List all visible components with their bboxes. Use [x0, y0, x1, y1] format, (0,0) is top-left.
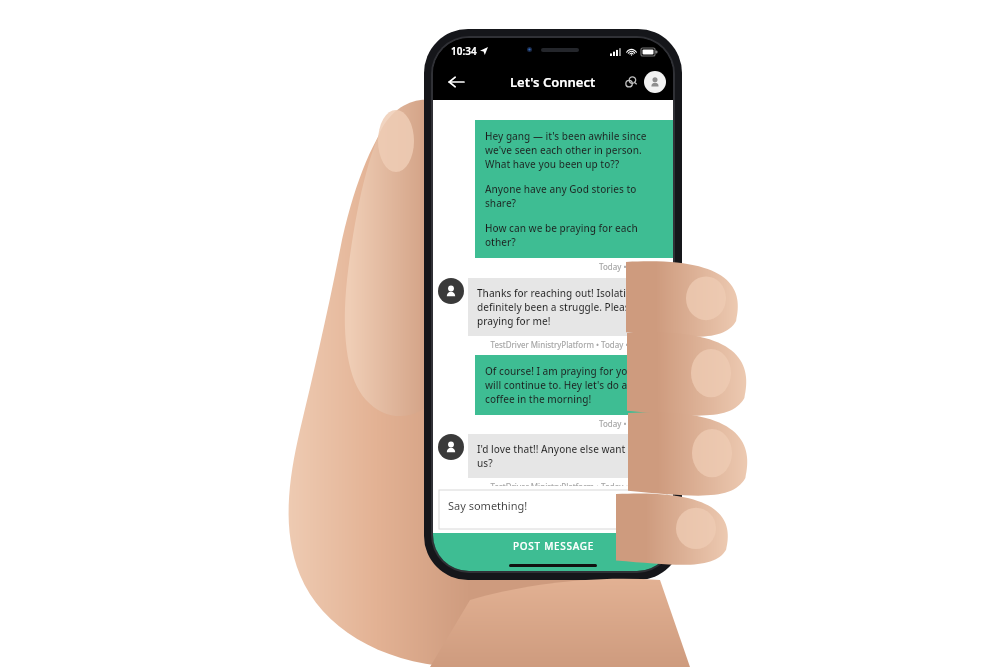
- staticText: Anyone have any God stories to share?: [485, 182, 663, 210]
- staticText: 10:34: [451, 44, 477, 58]
- staticText: Thanks for reaching out! Isolation has d…: [477, 286, 664, 328]
- button[interactable]: Sender avatar: [438, 278, 464, 304]
- staticText: How can we be praying for each other?: [485, 221, 663, 249]
- button[interactable]: Profile: [644, 71, 666, 93]
- staticText: TestDriver MinistryPlatform • Today • 10…: [433, 339, 665, 350]
- staticText: Let's Connect: [510, 73, 596, 91]
- staticText: Today • 10:31 am: [433, 418, 663, 429]
- button[interactable]: Hey gang — it's been awhile since we've …: [475, 120, 673, 258]
- staticText: Say something!: [448, 498, 528, 513]
- staticText: TestDriver MinistryPlatform • Today • 10…: [433, 481, 665, 486]
- staticText: Of course! I am praying for you and will…: [485, 364, 663, 406]
- button[interactable]: Say something!: [439, 490, 667, 521]
- button[interactable]: POST MESSAGE: [433, 533, 673, 559]
- button[interactable]: Back: [441, 67, 471, 97]
- button[interactable]: Thanks for reaching out! Isolation has d…: [468, 278, 673, 336]
- staticText: POST MESSAGE: [513, 539, 594, 553]
- staticText: Hey gang — it's been awhile since we've …: [485, 129, 663, 171]
- staticText: I'd love that!! Anyone else want to join…: [477, 442, 664, 470]
- staticText: Today • 10:26 am: [433, 261, 663, 272]
- button[interactable]: I'd love that!! Anyone else want to join…: [468, 434, 673, 478]
- button[interactable]: Sender avatar: [438, 434, 464, 460]
- button[interactable]: Attachments: [621, 72, 641, 92]
- button[interactable]: Of course! I am praying for you and will…: [475, 355, 673, 415]
